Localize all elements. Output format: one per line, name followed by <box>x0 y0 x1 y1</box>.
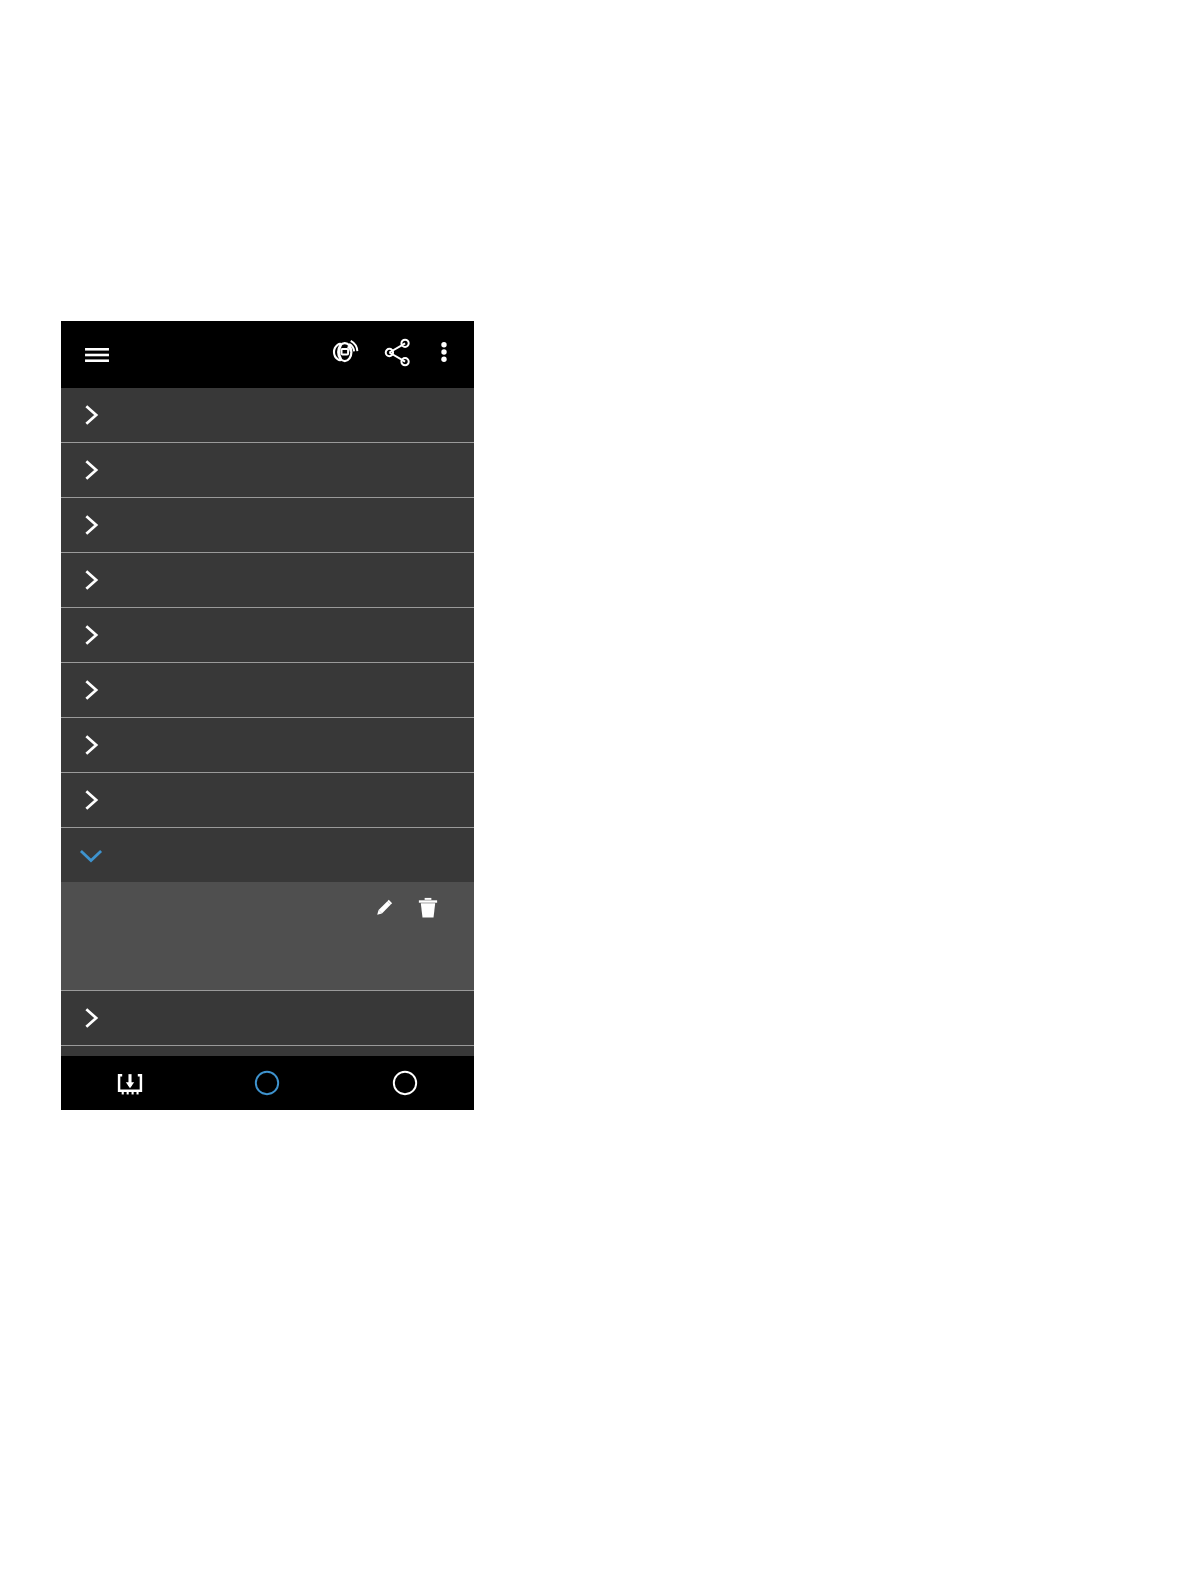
button[interactable]: Edit <box>364 888 404 928</box>
button[interactable] <box>61 608 474 662</box>
button[interactable]: Record <box>198 1056 336 1110</box>
button[interactable] <box>61 498 474 552</box>
button[interactable] <box>61 991 474 1045</box>
button[interactable]: Collapse section <box>61 828 474 882</box>
button[interactable]: Share <box>374 329 420 375</box>
button[interactable] <box>61 718 474 772</box>
button[interactable] <box>61 443 474 497</box>
button[interactable]: Open navigation menu <box>71 329 123 381</box>
button[interactable]: Stop <box>336 1056 474 1110</box>
button[interactable] <box>61 388 474 442</box>
button[interactable] <box>61 773 474 827</box>
button[interactable]: Cast <box>322 328 370 376</box>
button[interactable]: Save <box>61 1056 198 1110</box>
button[interactable] <box>61 553 474 607</box>
button[interactable]: More options <box>422 330 466 374</box>
button[interactable]: Delete <box>408 888 448 928</box>
button[interactable] <box>61 663 474 717</box>
